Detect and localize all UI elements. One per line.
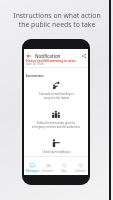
staticText: Messages	[26, 169, 39, 173]
staticText: Instructions on what action the public n…	[13, 11, 101, 29]
button[interactable]: Messages	[24, 157, 40, 173]
staticText: Map	[61, 169, 67, 173]
staticText: Forecast	[42, 169, 54, 173]
staticText: Evacuate vertical building or using it i…	[39, 92, 74, 100]
staticText: Check your neighbours	[42, 150, 71, 154]
button[interactable]: Map	[56, 157, 72, 173]
staticText: June 12, 10:45	[26, 62, 44, 66]
staticText: Settings	[75, 169, 86, 173]
staticText: Instructions	[26, 74, 44, 78]
button[interactable]: Share	[80, 52, 87, 59]
button[interactable]: Forecast	[40, 157, 56, 173]
button[interactable]: Back	[25, 52, 32, 59]
staticText: Heavy rainfall warning in area	[26, 58, 76, 62]
button[interactable]: Settings	[72, 157, 88, 173]
staticText: Follow the instructions given by emergen…	[32, 121, 80, 129]
staticText: Notification	[35, 53, 61, 59]
